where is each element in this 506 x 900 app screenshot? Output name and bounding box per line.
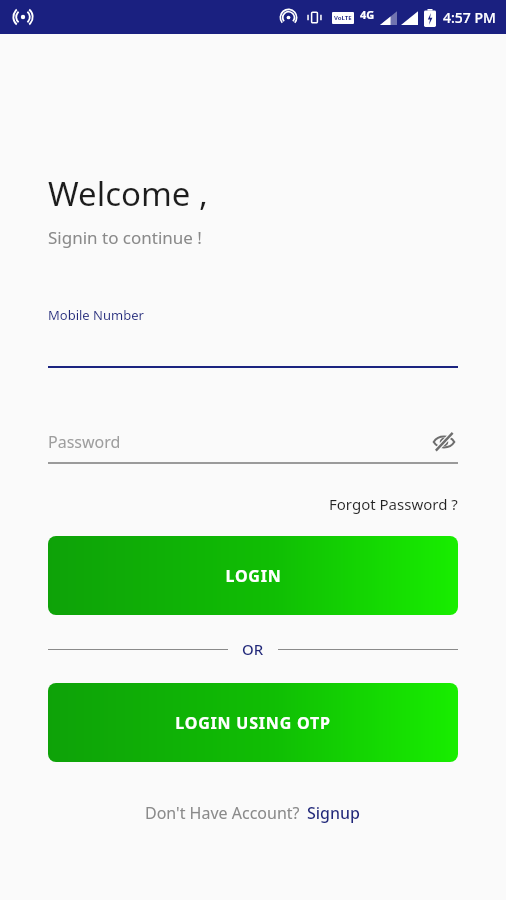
button[interactable]: Mobile Number	[48, 306, 458, 368]
staticText: Password	[48, 431, 430, 453]
staticText: LOGIN	[225, 565, 282, 587]
button[interactable]: Password	[48, 428, 458, 464]
staticText: Welcome ,	[48, 171, 208, 216]
button[interactable]: LOGIN	[48, 536, 458, 615]
button[interactable]: Forgot Password ?	[329, 494, 458, 514]
staticText: Don't Have Account?	[145, 802, 300, 824]
button[interactable]: Don't Have Account?	[48, 802, 458, 824]
staticText: 4:57 PM	[443, 8, 496, 27]
staticText: Mobile Number	[48, 306, 144, 324]
button[interactable]: Show password	[430, 428, 458, 456]
staticText: VoLTE	[334, 14, 352, 22]
staticText: Signin to continue !	[48, 226, 202, 249]
button[interactable]: LOGIN USING OTP	[48, 683, 458, 762]
staticText: 4G	[360, 7, 375, 22]
staticText: OR	[242, 639, 264, 659]
staticText: LOGIN USING OTP	[175, 712, 331, 734]
staticText: Signup	[307, 802, 361, 824]
